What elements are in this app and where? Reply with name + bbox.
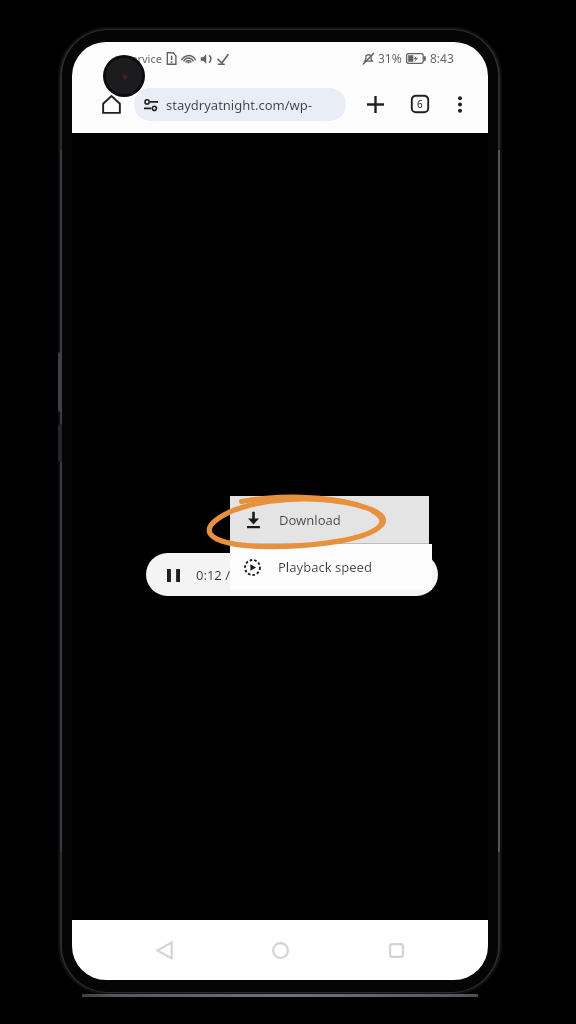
button[interactable]: New tab	[358, 87, 392, 121]
staticText: 31%	[378, 50, 402, 66]
button[interactable]: More options	[443, 87, 477, 121]
staticText: 8:43	[430, 50, 454, 66]
button[interactable]: Pause	[146, 553, 438, 596]
button[interactable]: Playback speed	[230, 544, 432, 590]
button[interactable]: Back	[140, 926, 188, 974]
button[interactable]: Recent apps	[372, 926, 420, 974]
button[interactable]: Pause	[162, 564, 184, 586]
staticText: Download	[279, 511, 341, 529]
button[interactable]: staydryatnight.com/wp-content	[134, 88, 346, 121]
staticText: staydryatnight.com/wp-content	[166, 96, 346, 114]
button[interactable]: Download	[230, 496, 429, 543]
staticText: 6	[417, 97, 423, 111]
staticText: Playback speed	[278, 558, 372, 576]
button[interactable]: Home	[94, 87, 128, 121]
button[interactable]: Tabs, 6 open	[403, 87, 437, 121]
staticText: 0:12 /	[196, 566, 231, 584]
staticText: service	[126, 51, 162, 66]
button[interactable]: Home	[256, 926, 304, 974]
